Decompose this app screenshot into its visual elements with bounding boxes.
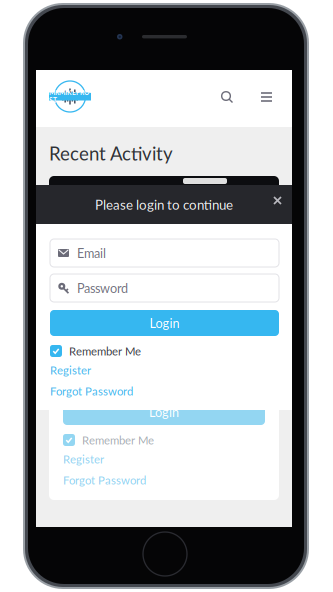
- button[interactable]: Login: [50, 310, 279, 336]
- staticText: Please login to continue: [95, 196, 233, 212]
- staticText: Login: [149, 315, 179, 331]
- staticText: Forgot Password: [50, 384, 133, 398]
- staticText: Email: [77, 245, 106, 261]
- button[interactable]: MrMikeFrost home: [48, 81, 92, 112]
- button[interactable]: Remember Me: [63, 434, 265, 446]
- button[interactable]: Login: [63, 399, 265, 425]
- button[interactable]: Forgot Password: [63, 474, 265, 486]
- staticText: MRMIKEFROST: [49, 88, 91, 104]
- staticText: Password: [77, 280, 128, 296]
- staticText: Recent Activity: [49, 142, 173, 164]
- staticText: Login: [149, 404, 179, 420]
- button[interactable]: Remember Me: [50, 345, 279, 357]
- staticText: Remember Me: [69, 344, 141, 358]
- button[interactable]: Close: [265, 188, 290, 213]
- staticText: Register: [63, 452, 104, 466]
- button[interactable]: Register: [50, 364, 279, 376]
- staticText: Forgot Password: [63, 473, 146, 487]
- button[interactable]: Search: [212, 82, 242, 112]
- button[interactable]: Register: [63, 453, 265, 465]
- button[interactable]: Forgot Password: [50, 385, 279, 397]
- staticText: Register: [50, 363, 91, 377]
- button[interactable]: Menu: [251, 83, 282, 111]
- staticText: Remember Me: [82, 433, 154, 447]
